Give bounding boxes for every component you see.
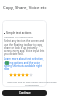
button[interactable]: Rate 3 stars — [17, 73, 21, 77]
staticText: Select any text on the screen and use th… — [4, 39, 45, 56]
button[interactable]: Rate 1 stars — [9, 73, 13, 77]
staticText: Simple text actions — [6, 31, 32, 35]
button[interactable]: Rate 4 stars — [21, 73, 25, 77]
button[interactable]: Continue — [2, 90, 47, 96]
button[interactable]: Rate 6 stars — [29, 73, 33, 77]
staticText: Continue — [19, 91, 31, 95]
staticText: Rate this app to help others find it and… — [7, 80, 57, 86]
button[interactable]: Learn more about text selection, sharing… — [4, 57, 45, 71]
button[interactable]: Rate 5 stars — [25, 73, 29, 77]
button[interactable]: Rate 2 stars — [13, 73, 17, 77]
staticText: Updated 12 August 2024 — [4, 35, 34, 38]
staticText: Copy, Share, Voice etc — [3, 5, 47, 11]
